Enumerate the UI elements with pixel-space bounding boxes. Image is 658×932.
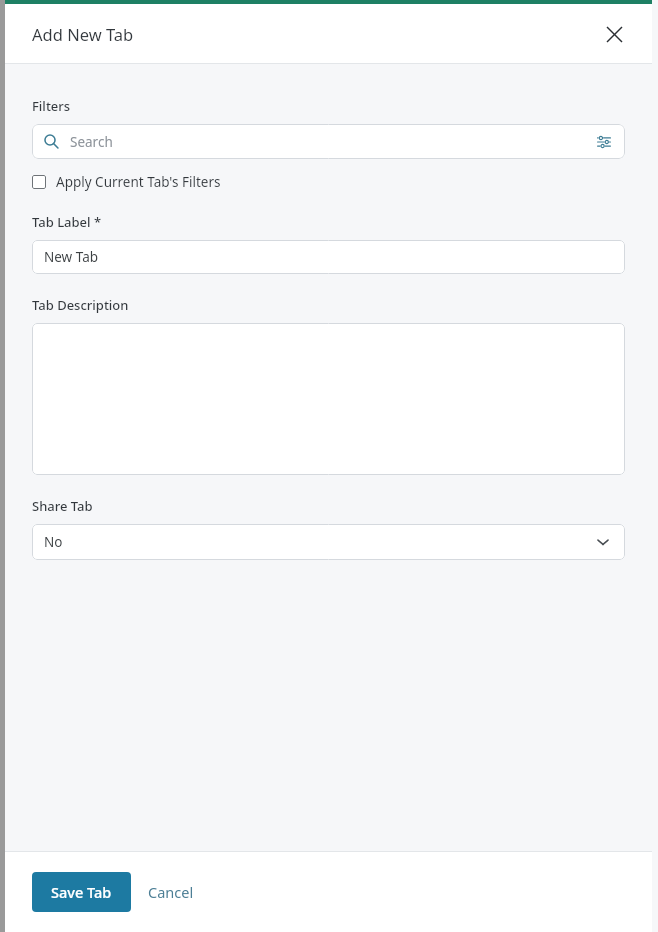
button[interactable] — [32, 323, 625, 475]
button[interactable]: No — [32, 524, 625, 560]
button[interactable]: Search — [32, 124, 625, 159]
button[interactable]: Apply Current Tab's Filters — [32, 171, 221, 193]
staticText: Tab Label * — [32, 213, 102, 231]
staticText: Add New Tab — [32, 23, 134, 45]
staticText: No — [44, 533, 63, 551]
button[interactable]: Cancel — [131, 872, 211, 912]
staticText: Search — [70, 133, 113, 151]
staticText: Share Tab — [32, 497, 93, 515]
button[interactable]: Save Tab — [32, 872, 131, 912]
button[interactable]: Filter options — [595, 133, 613, 151]
staticText: Save Tab — [51, 882, 112, 902]
button[interactable]: New Tab — [32, 240, 625, 274]
staticText: Cancel — [148, 882, 194, 902]
staticText: New Tab — [44, 248, 99, 266]
staticText: Tab Description — [32, 296, 129, 314]
staticText: Apply Current Tab's Filters — [56, 173, 221, 191]
button[interactable]: Close — [598, 18, 630, 50]
staticText: Filters — [32, 97, 71, 115]
